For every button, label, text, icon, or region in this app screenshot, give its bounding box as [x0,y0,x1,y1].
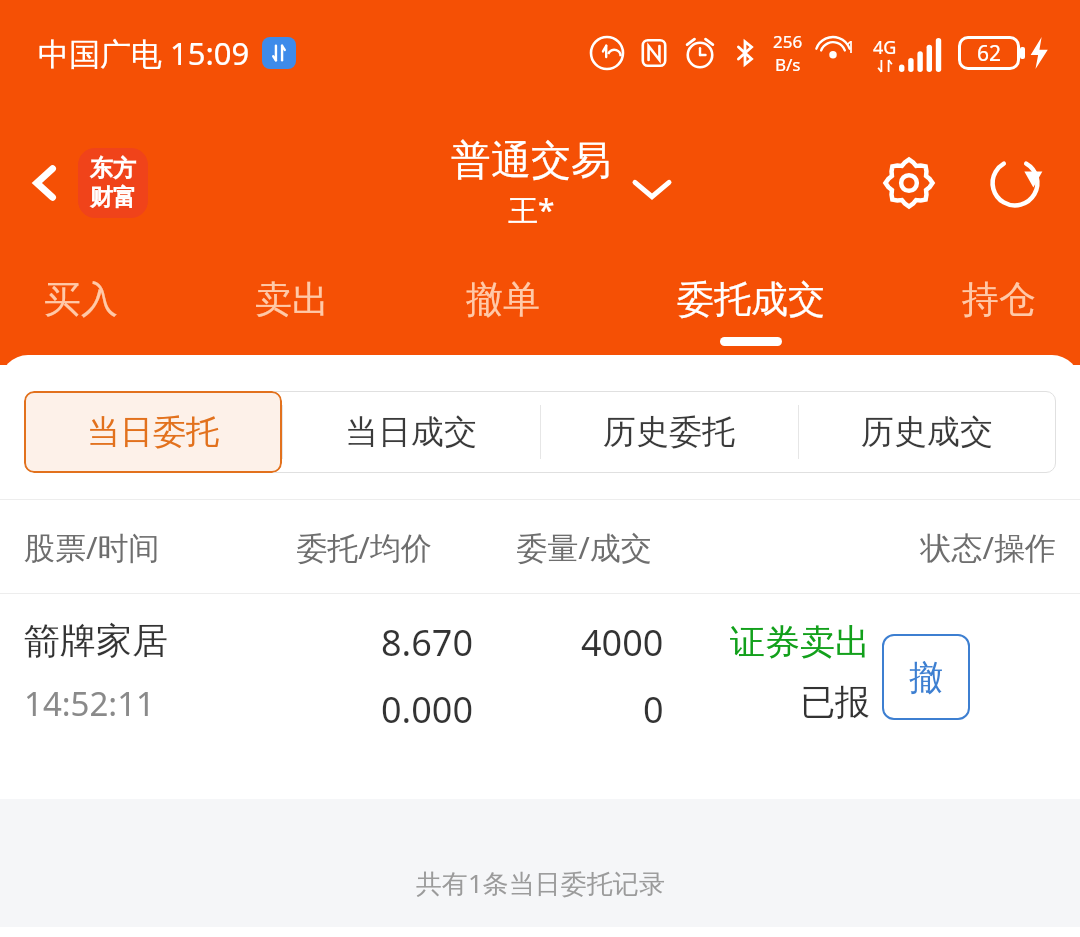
button[interactable]: 东方财富 [78,148,148,218]
staticText: 当日委托 [87,411,219,453]
staticText: 1 [846,36,856,58]
staticText: 撤单 [466,276,540,323]
staticText: 共有1条当日委托记录 [416,865,665,901]
button[interactable]: 当日成交 [282,391,540,473]
button[interactable]: 刷新 [976,144,1054,222]
staticText: 卖出 [255,276,329,323]
button[interactable]: 箭牌家居 [0,594,1080,799]
staticText: 箭牌家居 [24,618,168,663]
button[interactable]: 持仓 [958,260,1040,323]
staticText: 股票/时间 [24,526,249,568]
staticText: B/s [775,53,801,76]
button[interactable]: 撤 [882,634,970,720]
staticText: 0 [643,685,664,734]
button[interactable]: 当日委托 [24,391,282,473]
staticText: 8.670 [381,618,474,667]
staticText: 证券卖出 [730,620,870,664]
staticText: 财富 [90,183,136,212]
staticText: 历史委托 [603,411,735,453]
staticText: 普通交易 [451,135,611,185]
button[interactable]: 撤单 [462,260,544,323]
button[interactable]: 买入 [40,260,122,323]
staticText: 4000 [581,618,664,667]
staticText: 状态/操作 [689,526,1056,568]
button[interactable]: 设置 [870,144,948,222]
staticText: 已报 [800,680,870,724]
staticText: 王* [508,189,555,230]
staticText: 委托/均价 [249,526,479,568]
button[interactable]: 卖出 [251,260,333,323]
button[interactable]: 历史委托 [540,391,798,473]
staticText: 0.000 [381,685,474,734]
staticText: 委托成交 [677,276,825,323]
staticText: 撤 [909,656,943,699]
button[interactable]: 普通交易 [451,135,669,230]
staticText: 256 [773,30,803,53]
button[interactable]: 委托成交 [673,260,829,346]
staticText: 历史成交 [861,411,993,453]
staticText: 14:52:11 [24,681,155,726]
staticText: 东方 [90,154,136,183]
staticText: 中国广电 15:09 [38,32,250,74]
staticText: 4G [873,35,897,60]
button[interactable]: 返回 [14,152,76,214]
staticText: 当日成交 [345,411,477,453]
staticText: 持仓 [962,276,1036,323]
staticText: 买入 [44,276,118,323]
staticText: 62 [977,39,1002,68]
staticText: 委量/成交 [479,526,689,568]
button[interactable]: 历史成交 [798,391,1056,473]
